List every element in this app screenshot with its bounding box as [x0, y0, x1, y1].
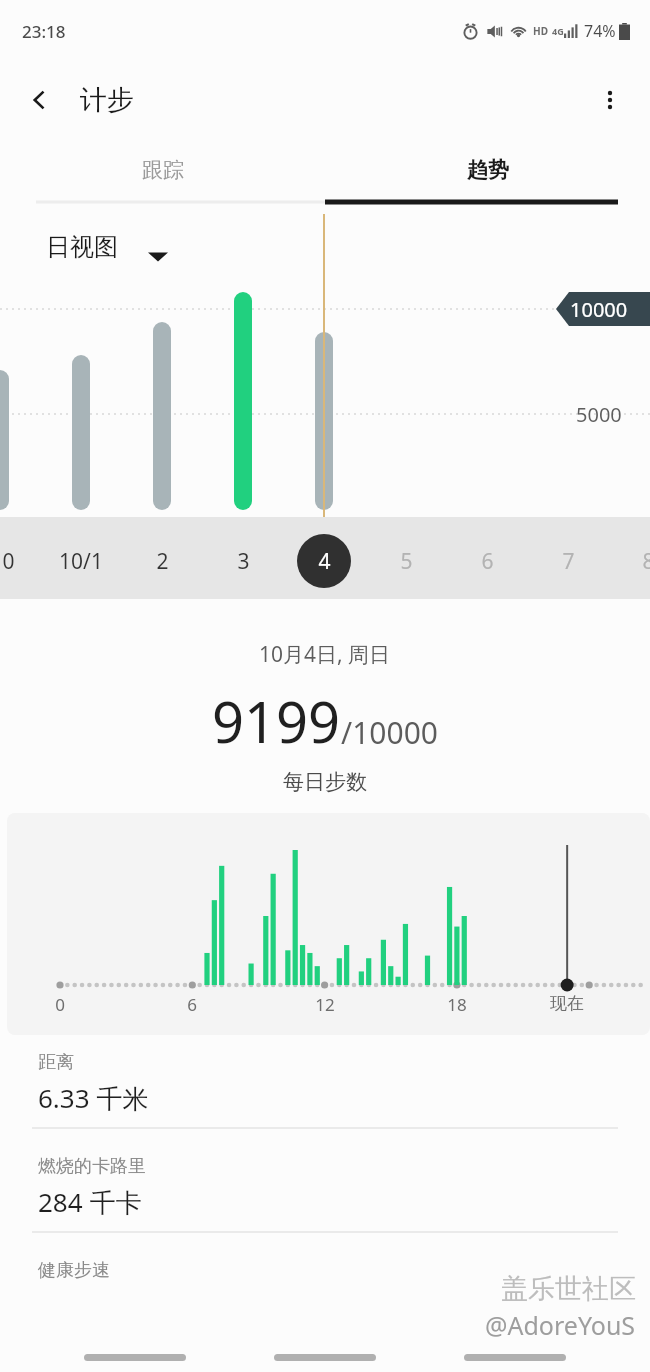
staticText: 每日步数: [283, 769, 367, 795]
staticText: 10000: [570, 296, 628, 323]
staticText: 跟踪: [142, 157, 184, 183]
button[interactable]: Navigation: [460, 1344, 570, 1370]
staticText: 6.33 千米: [38, 1080, 149, 1116]
staticText: 18: [447, 993, 467, 1016]
button[interactable]: 4: [294, 537, 354, 585]
button[interactable]: 趋势: [325, 138, 650, 202]
button[interactable]: Navigation: [80, 1344, 190, 1370]
button[interactable]: 燃烧的卡路里: [0, 1135, 650, 1239]
staticText: 12: [315, 993, 335, 1016]
staticText: 健康步速: [38, 1259, 110, 1282]
button[interactable]: 8: [618, 537, 650, 585]
staticText: /10000: [341, 712, 438, 753]
button[interactable]: 0: [0, 537, 38, 585]
staticText: 距离: [38, 1051, 74, 1074]
staticText: 4G: [552, 25, 564, 37]
staticText: 2: [156, 547, 169, 576]
staticText: 6: [187, 993, 197, 1016]
button[interactable]: Back: [14, 74, 66, 126]
staticText: 6: [481, 547, 494, 576]
staticText: 23:18: [22, 20, 66, 43]
button[interactable]: More options: [584, 74, 636, 126]
button[interactable]: 10/1: [51, 537, 111, 585]
staticText: HD: [533, 24, 548, 38]
staticText: 8: [642, 547, 650, 576]
staticText: 4: [318, 547, 331, 576]
button[interactable]: [36, 222, 186, 274]
button[interactable]: 6: [457, 537, 517, 585]
button[interactable]: 5: [376, 537, 436, 585]
staticText: @AdoreYouS: [485, 1308, 636, 1342]
staticText: 7: [562, 547, 575, 576]
staticText: 10月4日, 周日: [259, 640, 391, 669]
staticText: 10/1: [59, 547, 103, 576]
staticText: 74%: [584, 20, 616, 42]
button[interactable]: 距离: [0, 1031, 650, 1135]
staticText: 9199: [212, 683, 341, 759]
button[interactable]: 健康步速: [0, 1239, 650, 1282]
staticText: 5: [400, 547, 413, 576]
staticText: 3: [237, 547, 250, 576]
staticText: 现在: [550, 993, 584, 1014]
staticText: 趋势: [467, 157, 509, 183]
button[interactable]: 跟踪: [0, 138, 325, 202]
staticText: 日视图: [46, 232, 118, 262]
staticText: 0: [55, 993, 65, 1016]
staticText: 燃烧的卡路里: [38, 1155, 146, 1178]
button[interactable]: Navigation: [270, 1344, 380, 1370]
staticText: 5000: [576, 401, 622, 428]
staticText: 284 千卡: [38, 1184, 142, 1220]
button[interactable]: 2: [132, 537, 192, 585]
button[interactable]: 3: [213, 537, 273, 585]
staticText: 0: [2, 547, 15, 576]
button[interactable]: 7: [538, 537, 598, 585]
staticText: 盖乐世社区: [501, 1272, 636, 1306]
staticText: 计步: [80, 83, 134, 117]
